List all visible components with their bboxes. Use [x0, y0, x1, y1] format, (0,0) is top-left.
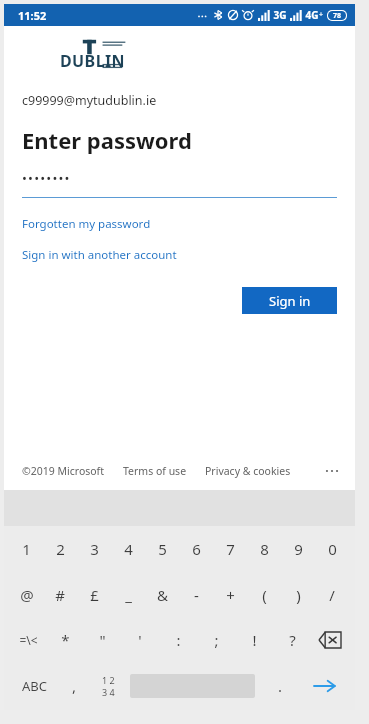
- button[interactable]: ': [121, 617, 159, 662]
- staticText: +: [319, 10, 324, 20]
- button[interactable]: Privacy & cookies: [205, 464, 291, 478]
- button[interactable]: :: [159, 617, 197, 662]
- staticText: Privacy & cookies: [205, 464, 291, 478]
- staticText: 9: [294, 539, 303, 559]
- button[interactable]: ••••••••: [22, 169, 337, 198]
- button[interactable]: Sign in: [242, 287, 337, 314]
- button[interactable]: ,: [59, 662, 90, 710]
- button[interactable]: 6: [179, 526, 213, 572]
- button[interactable]: Terms of use: [123, 464, 187, 478]
- button[interactable]: 7: [213, 526, 247, 572]
- button[interactable]: ": [84, 617, 121, 662]
- staticText: ;: [214, 630, 219, 650]
- staticText: ABC: [22, 677, 47, 695]
- button[interactable]: 2: [43, 526, 77, 572]
- staticText: (: [262, 585, 267, 605]
- staticText: _: [125, 585, 132, 605]
- button[interactable]: &: [145, 572, 179, 617]
- staticText: -: [194, 585, 199, 605]
- staticText: 8: [260, 539, 269, 559]
- button[interactable]: Backspace: [311, 617, 349, 662]
- button[interactable]: =\<: [10, 617, 47, 662]
- staticText: 11:52: [18, 8, 47, 23]
- staticText: =\<: [19, 632, 38, 648]
- staticText: 3 4: [102, 686, 115, 698]
- button[interactable]: More options: [321, 462, 343, 480]
- button[interactable]: *: [47, 617, 84, 662]
- staticText: 2: [56, 539, 65, 559]
- staticText: £: [90, 585, 99, 605]
- staticText: ): [296, 585, 301, 605]
- staticText: 7: [226, 539, 235, 559]
- staticText: Sign in: [269, 292, 311, 310]
- staticText: Terms of use: [123, 464, 187, 478]
- staticText: #: [55, 585, 65, 605]
- staticText: /: [329, 585, 335, 605]
- button[interactable]: Numbers: [90, 662, 126, 710]
- button[interactable]: ): [281, 572, 315, 617]
- button[interactable]: ?: [273, 617, 311, 662]
- staticText: @: [20, 585, 34, 605]
- staticText: 3G: [271, 8, 287, 22]
- button[interactable]: _: [111, 572, 145, 617]
- staticText: !: [252, 630, 257, 650]
- staticText: 4: [124, 539, 133, 559]
- button[interactable]: 0: [315, 526, 349, 572]
- staticText: DUBLIN: [60, 50, 126, 72]
- button[interactable]: 3: [77, 526, 111, 572]
- button[interactable]: £: [77, 572, 111, 617]
- staticText: :: [176, 630, 181, 650]
- button[interactable]: @: [10, 572, 43, 617]
- button[interactable]: Enter: [301, 662, 349, 710]
- button[interactable]: 8: [247, 526, 281, 572]
- staticText: &: [157, 585, 168, 605]
- button[interactable]: (: [247, 572, 281, 617]
- staticText: 6: [192, 539, 201, 559]
- staticText: ": [99, 630, 106, 650]
- staticText: ': [138, 630, 142, 650]
- button[interactable]: 4: [111, 526, 145, 572]
- staticText: 1: [22, 539, 31, 559]
- staticText: *: [61, 630, 70, 650]
- staticText: 78: [333, 11, 342, 20]
- staticText: 0: [328, 539, 337, 559]
- staticText: 4G: [303, 8, 319, 22]
- staticText: +: [226, 585, 235, 605]
- staticText: ,: [72, 676, 77, 696]
- button[interactable]: 9: [281, 526, 315, 572]
- button[interactable]: -: [179, 572, 213, 617]
- button[interactable]: Forgotten my password: [22, 216, 151, 232]
- staticText: ••••••••: [22, 169, 71, 187]
- staticText: 5: [158, 539, 167, 559]
- staticText: c99999@mytudublin.ie: [22, 92, 157, 109]
- button[interactable]: +: [213, 572, 247, 617]
- button[interactable]: /: [315, 572, 349, 617]
- button[interactable]: !: [235, 617, 273, 662]
- button[interactable]: #: [43, 572, 77, 617]
- button[interactable]: 1: [10, 526, 43, 572]
- staticText: Sign in with another account: [22, 247, 177, 263]
- staticText: ?: [289, 630, 296, 650]
- button[interactable]: ABC: [10, 662, 59, 710]
- staticText: 3: [90, 539, 99, 559]
- button[interactable]: 5: [145, 526, 179, 572]
- staticText: .: [278, 676, 283, 696]
- staticText: Forgotten my password: [22, 216, 151, 232]
- staticText: 1 2: [102, 674, 115, 686]
- button[interactable]: ;: [197, 617, 235, 662]
- staticText: ©2019 Microsoft: [22, 464, 105, 478]
- button[interactable]: .: [259, 662, 301, 710]
- button[interactable]: Sign in with another account: [22, 247, 177, 263]
- staticText: Enter password: [22, 125, 192, 155]
